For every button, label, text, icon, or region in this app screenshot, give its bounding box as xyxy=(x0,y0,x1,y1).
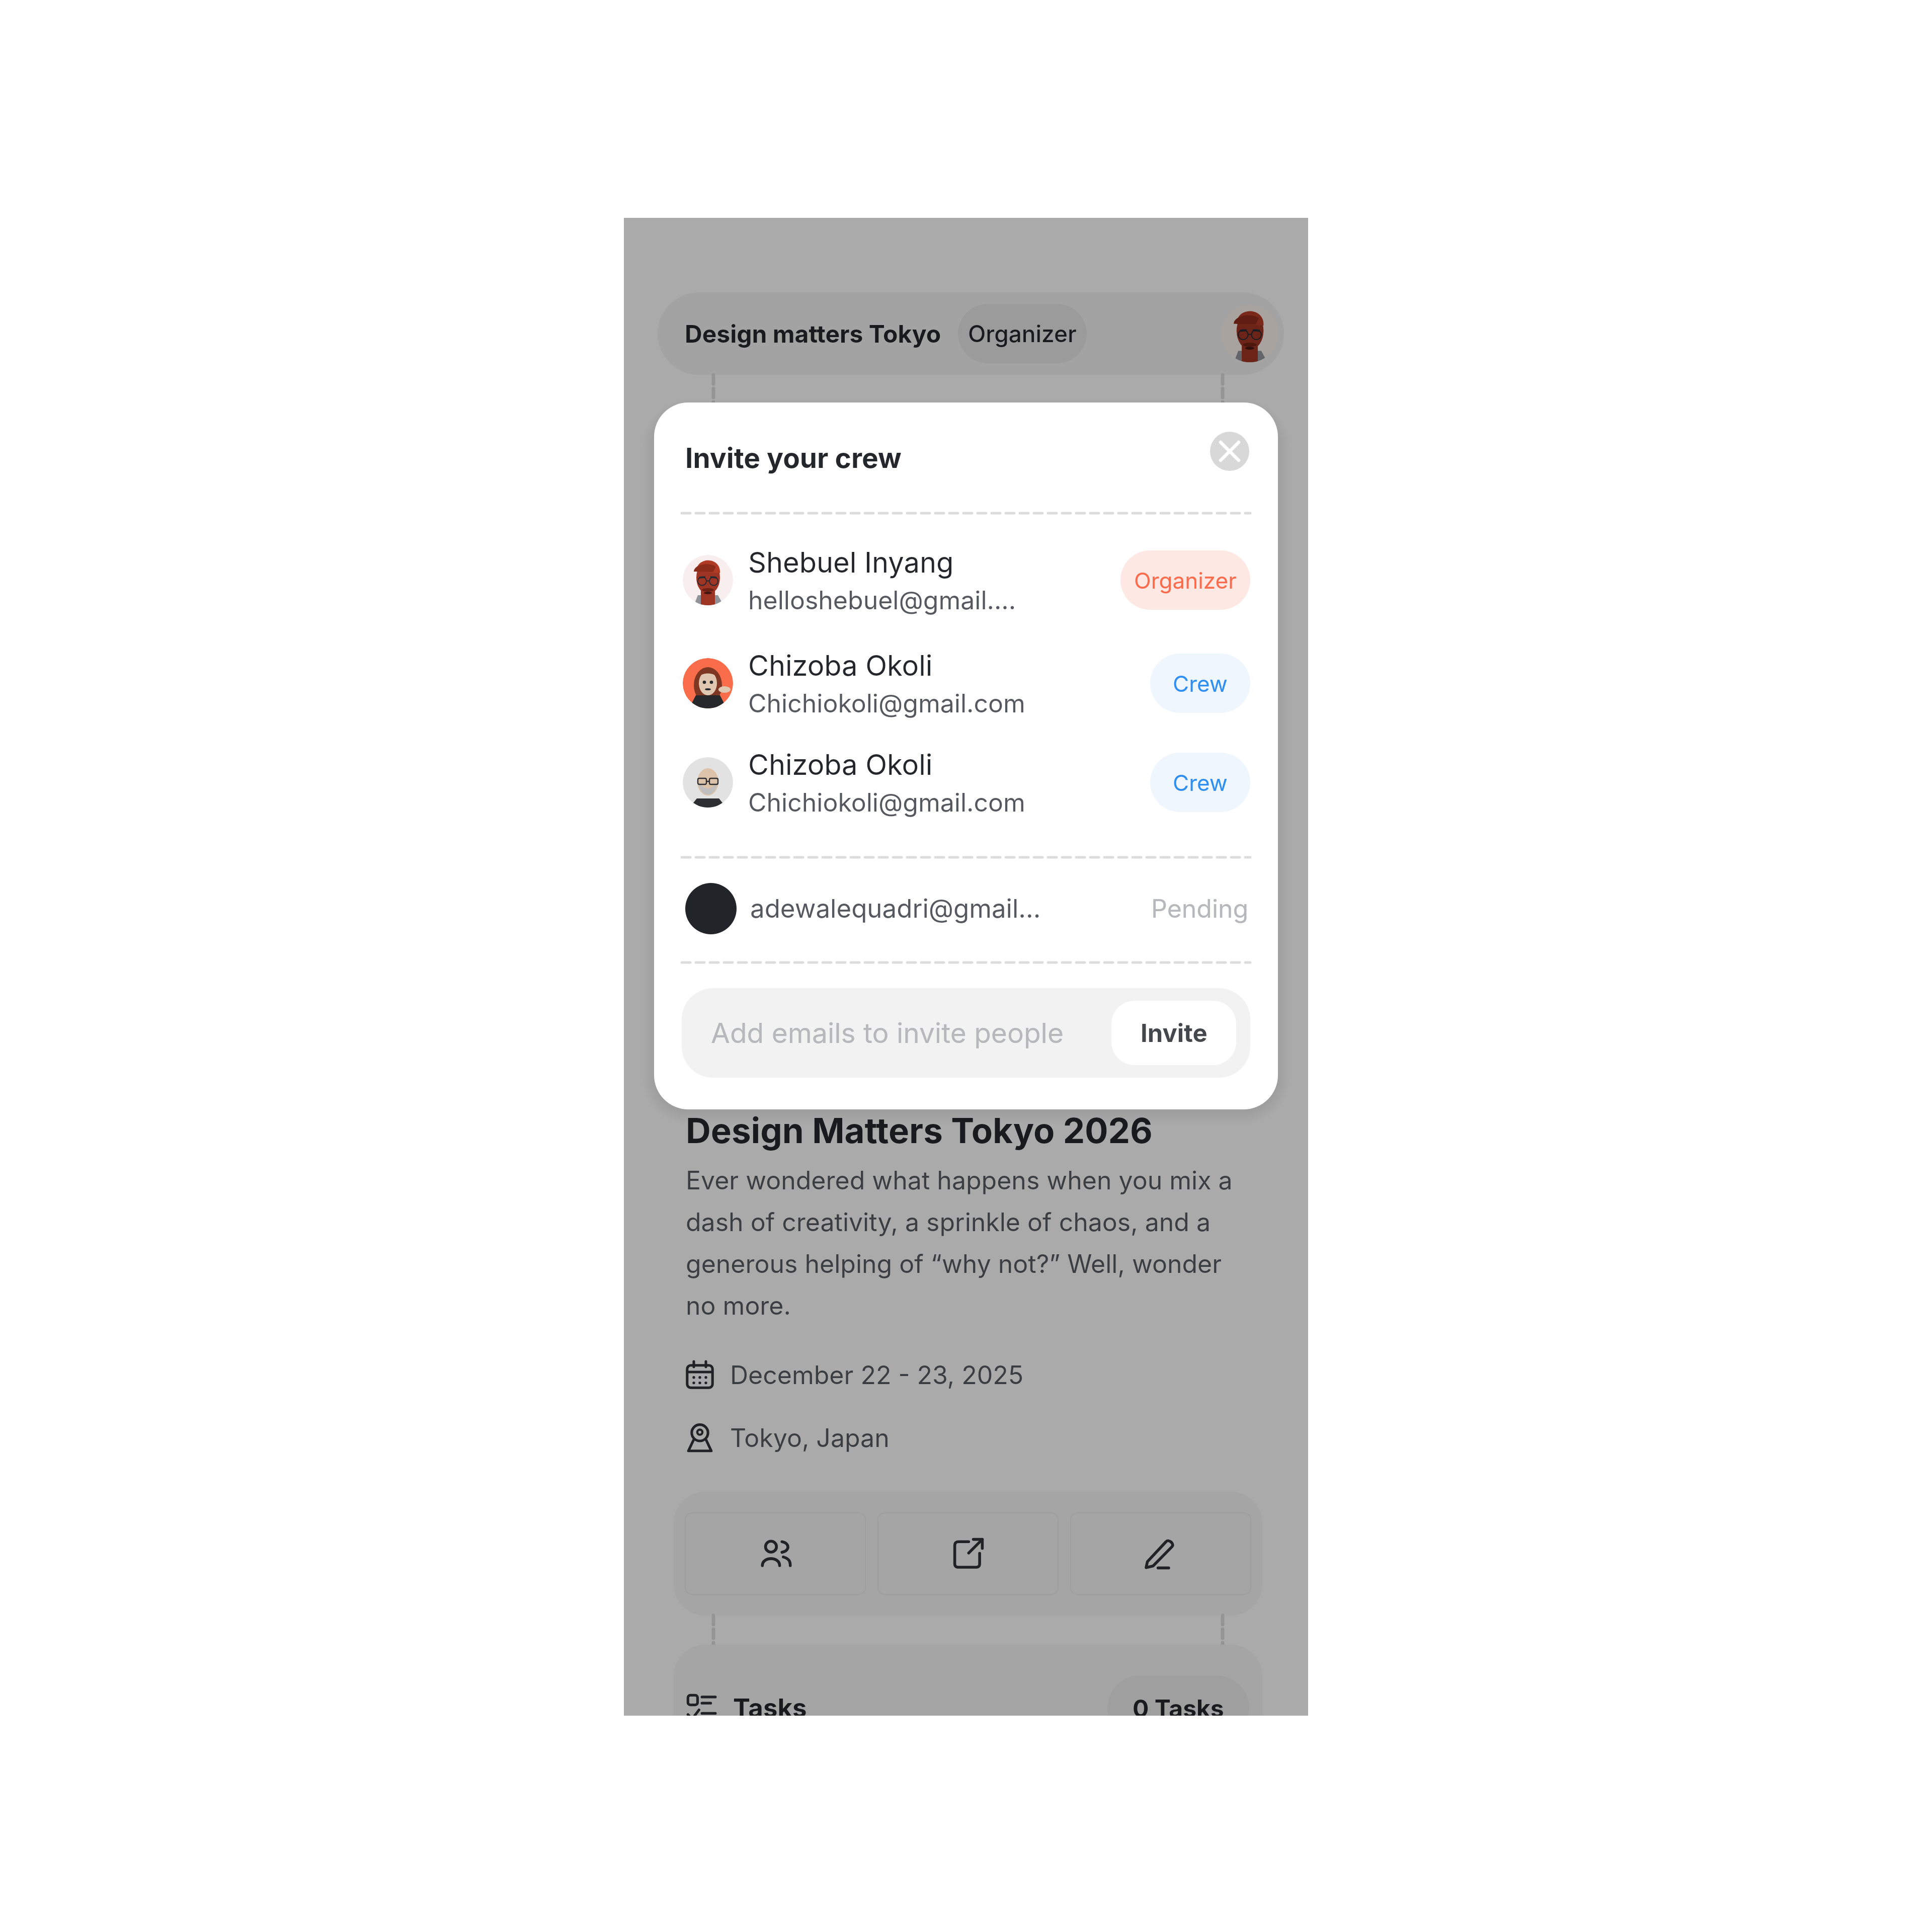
staticText: Organizer xyxy=(1134,567,1237,594)
staticText: Pending xyxy=(1151,894,1249,924)
staticText: Invite xyxy=(1141,1018,1207,1048)
button[interactable]: People xyxy=(685,1512,866,1595)
staticText: helloshebuel@gmail.... xyxy=(748,585,1016,615)
staticText: Chichiokoli@gmail.com xyxy=(748,787,1025,818)
button[interactable]: Crew xyxy=(1150,654,1250,713)
button[interactable]: Crew xyxy=(1150,753,1250,812)
button[interactable]: Share xyxy=(877,1512,1059,1595)
staticText: adewalequadri@gmail... xyxy=(750,893,1041,924)
staticText: Chichiokoli@gmail.com xyxy=(748,688,1025,718)
button[interactable]: Design matters Tokyo xyxy=(658,292,1284,375)
staticText: Ever wondered what happens when you mix … xyxy=(686,1165,1239,1321)
staticText: Organizer xyxy=(968,319,1077,348)
staticText: Crew xyxy=(1173,670,1228,697)
button[interactable]: Tasks xyxy=(674,1645,1262,1716)
staticText: Invite your crew xyxy=(685,441,902,475)
button[interactable]: Shebuel Inyang xyxy=(654,540,1278,620)
staticText: Tokyo, Japan xyxy=(730,1423,890,1453)
staticText: Crew xyxy=(1173,769,1228,796)
button[interactable]: Invite xyxy=(1111,1001,1236,1065)
staticText: Chizoba Okoli xyxy=(748,748,933,782)
staticText: Design Matters Tokyo 2026 xyxy=(686,1109,1153,1151)
staticText: Add emails to invite people xyxy=(711,1016,1064,1050)
staticText: Chizoba Okoli xyxy=(748,649,933,683)
staticText: 0 Tasks xyxy=(1133,1694,1224,1716)
staticText: Tasks xyxy=(733,1693,807,1716)
button[interactable]: Organizer xyxy=(1120,550,1250,610)
staticText: Design matters Tokyo xyxy=(685,319,941,348)
button[interactable]: Edit xyxy=(1070,1512,1251,1595)
button[interactable]: adewalequadri@gmail... xyxy=(654,881,1278,936)
button[interactable]: Close xyxy=(1210,432,1249,471)
button[interactable]: Chizoba Okoli xyxy=(654,742,1278,823)
staticText: Shebuel Inyang xyxy=(748,545,954,580)
staticText: December 22 - 23, 2025 xyxy=(730,1360,1024,1390)
button[interactable]: Chizoba Okoli xyxy=(654,643,1278,723)
